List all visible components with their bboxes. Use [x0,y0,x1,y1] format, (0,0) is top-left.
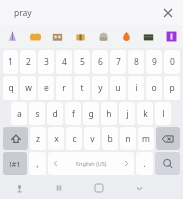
button[interactable] [46,25,68,48]
button[interactable]: . [136,152,153,175]
button[interactable]: p [164,76,180,100]
button[interactable]: , [29,152,46,175]
button[interactable] [69,25,91,48]
staticText: . [143,158,146,170]
staticText: 1 [8,56,13,68]
staticText: r [62,82,66,94]
staticText: k [143,108,148,120]
staticText: v [90,133,95,145]
button[interactable] [24,25,46,48]
button[interactable]: 2 [20,50,36,74]
staticText: o [151,82,157,94]
button[interactable]: i [128,76,144,100]
button[interactable]: 8 [128,50,144,74]
button[interactable]: Shift [3,127,28,150]
button[interactable]: x [48,127,64,150]
button[interactable]: a [11,102,27,125]
button[interactable]: m [138,127,154,150]
button[interactable]: c [66,127,82,150]
staticText: 9 [152,56,157,68]
button[interactable]: 5 [74,50,90,74]
staticText: 0 [170,56,175,68]
staticText: a [17,108,22,120]
staticText: g [88,108,94,120]
staticText: 7 [116,56,121,68]
staticText: j [126,108,129,120]
staticText: , [36,158,39,170]
staticText: q [8,82,14,94]
button[interactable]: g [83,102,99,125]
button[interactable]: 4 [56,50,72,74]
button[interactable]: r [56,76,72,100]
staticText: i [135,82,138,94]
button[interactable]: 9 [146,50,162,74]
staticText: z [36,133,40,145]
button[interactable]: Voice input [0,177,39,199]
button[interactable]: q [3,76,18,100]
button[interactable]: d [47,102,63,125]
staticText: b [107,133,113,145]
staticText: e [44,82,49,94]
button[interactable]: j [119,102,135,125]
button[interactable]: English (US) [48,152,134,175]
staticText: !#1 [9,159,21,169]
button[interactable]: n [120,127,136,150]
staticText: n [125,133,131,145]
button[interactable]: f [65,102,81,125]
staticText: w [25,82,32,94]
button[interactable]: t [74,76,90,100]
button[interactable]: v [84,127,100,150]
staticText: p [169,82,175,94]
button[interactable] [92,25,114,48]
button[interactable] [115,25,137,48]
staticText: t [80,82,84,94]
button[interactable]: w [20,76,36,100]
staticText: u [115,82,121,94]
staticText: pray [14,7,32,19]
button[interactable]: 1 [3,50,18,74]
staticText: h [106,108,112,120]
button[interactable]: Backspace [156,127,180,150]
button[interactable] [1,25,23,48]
staticText: English (US) [76,160,107,167]
button[interactable]: l [155,102,171,125]
button[interactable]: Hide keyboard [119,177,159,199]
staticText: 2 [26,56,31,68]
staticText: 4 [62,56,67,68]
staticText: 5 [80,56,85,68]
button[interactable]: Home [79,177,119,199]
button[interactable]: 0 [164,50,180,74]
button[interactable] [137,25,159,48]
button[interactable]: Search [155,152,180,175]
staticText: f [72,108,75,120]
button[interactable]: u [110,76,126,100]
staticText: y [98,82,103,94]
button[interactable]: h [101,102,117,125]
staticText: d [52,108,58,120]
button[interactable] [160,25,182,48]
staticText: l [162,108,165,120]
button[interactable]: Clear [159,4,177,22]
button[interactable]: z [30,127,46,150]
button[interactable]: k [137,102,153,125]
button[interactable]: !#1 [3,152,27,175]
button[interactable]: 7 [110,50,126,74]
staticText: c [72,133,77,145]
staticText: 3 [44,56,49,68]
staticText: 8 [134,56,139,68]
staticText: 6 [98,56,103,68]
staticText: m [142,133,150,145]
staticText: s [35,108,40,120]
button[interactable]: 6 [92,50,108,74]
button[interactable]: b [102,127,118,150]
button[interactable]: y [92,76,108,100]
staticText: x [54,133,59,145]
button[interactable]: s [29,102,45,125]
button[interactable]: Recents [39,177,79,199]
button[interactable]: 3 [38,50,54,74]
button[interactable]: o [146,76,162,100]
button[interactable]: e [38,76,54,100]
button[interactable]: pray [0,0,183,25]
